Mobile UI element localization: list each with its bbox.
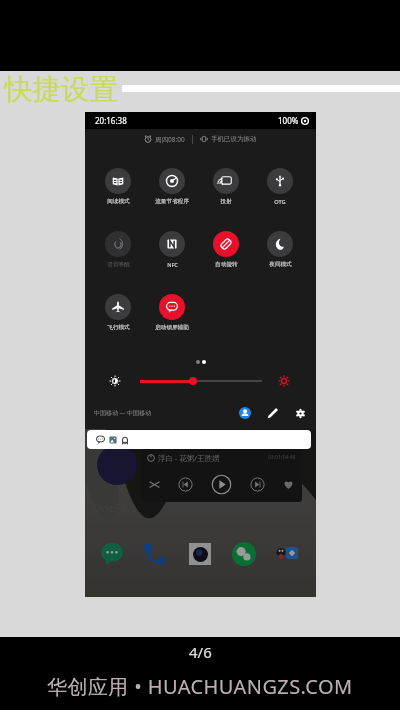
staticText: 03:01/04:48	[268, 454, 296, 461]
button[interactable]: Edit	[267, 407, 279, 419]
button[interactable]: 语音唤醒	[91, 231, 145, 268]
button[interactable]: Camera	[189, 543, 211, 565]
staticText: OnePlus	[93, 500, 137, 515]
button[interactable]: Play	[211, 474, 232, 495]
button[interactable]: Shuffle	[149, 479, 160, 490]
button[interactable]: App	[286, 547, 298, 559]
staticText: NFC	[167, 261, 178, 269]
button[interactable]: 自动旋转	[199, 231, 253, 268]
staticText: 自动旋转	[215, 261, 238, 268]
button[interactable]: 流量节省程序	[145, 168, 199, 205]
button[interactable]: 夜间模式	[253, 231, 307, 268]
staticText: 华创应用 • HUACHUANGZS.COM	[47, 673, 353, 700]
staticText: 20:16:38	[95, 115, 127, 126]
button[interactable]: NFC	[145, 231, 199, 269]
staticText: 4/6	[189, 642, 212, 662]
staticText: 周四08:00	[155, 135, 185, 144]
button[interactable]: 投射	[199, 168, 253, 205]
button[interactable]: Settings	[295, 408, 306, 419]
staticText: 夜间模式	[269, 261, 292, 268]
button[interactable]: 阅读模式	[91, 168, 145, 205]
button[interactable]: Previous	[178, 477, 193, 492]
staticText: 语音唤醒	[107, 261, 130, 268]
staticText: 100%	[278, 115, 299, 126]
staticText: OTG	[274, 198, 286, 206]
staticText: 流量节省程序	[155, 198, 189, 205]
button[interactable]: Phone	[143, 543, 165, 565]
button[interactable]: Messages	[101, 543, 123, 565]
staticText: 快捷设置	[4, 72, 118, 106]
button[interactable]: 飞行模式	[91, 294, 145, 331]
staticText: 手机已设为振动	[211, 135, 257, 143]
button[interactable]: OTG	[253, 168, 307, 206]
staticText: 投射	[220, 198, 232, 205]
button[interactable]: User	[239, 407, 251, 419]
staticText: 飞行模式	[107, 324, 130, 331]
staticText: 启动锁屏辅助	[155, 324, 189, 331]
button[interactable]: WeChat	[232, 542, 256, 566]
button[interactable]: 启动锁屏辅助	[145, 294, 199, 331]
staticText: 中国移动 — 中国移动	[94, 409, 152, 417]
staticText: 浮白 - 花粥/王胜娚	[158, 453, 220, 463]
button[interactable]: Favorite	[283, 479, 294, 490]
button[interactable]: QQ	[275, 547, 287, 559]
button[interactable]: Next	[250, 477, 265, 492]
staticText: 阅读模式	[107, 198, 130, 205]
